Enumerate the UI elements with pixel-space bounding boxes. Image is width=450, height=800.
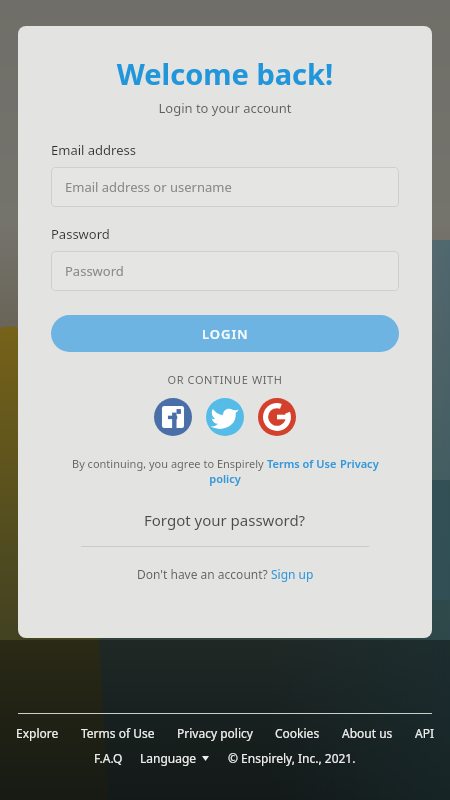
staticText: About us <box>342 725 393 741</box>
button[interactable]: F.A.Q <box>94 750 123 766</box>
staticText: Terms of Use <box>81 725 155 741</box>
button[interactable]: About us <box>342 725 393 741</box>
staticText: Email address or username <box>65 178 232 196</box>
staticText: Language <box>140 750 197 766</box>
button[interactable]: Continue with Google <box>258 398 296 436</box>
button[interactable]: Privacy <box>340 456 379 471</box>
staticText: © Enspirely, Inc., 2021. <box>228 750 356 766</box>
staticText: Don't have an account? <box>137 566 271 582</box>
staticText: OR CONTINUE WITH <box>51 372 399 387</box>
staticText: Email address <box>51 141 136 159</box>
button[interactable]: Terms of Use <box>81 725 155 741</box>
button[interactable]: Terms of Use <box>267 456 337 471</box>
staticText: Welcome back! <box>51 54 399 93</box>
button[interactable]: Explore <box>16 725 59 741</box>
staticText: Cookies <box>275 725 320 741</box>
button[interactable]: LOGIN <box>51 315 399 352</box>
button[interactable]: policy <box>51 471 399 486</box>
button[interactable]: Language <box>140 750 209 766</box>
button[interactable]: Email address or username <box>51 167 399 207</box>
staticText: Privacy policy <box>177 725 253 741</box>
staticText: Explore <box>16 725 59 741</box>
button[interactable]: Forgot your password? <box>51 510 399 530</box>
staticText: LOGIN <box>202 325 249 343</box>
button[interactable]: Sign up <box>271 566 314 582</box>
button[interactable]: Privacy policy <box>177 725 253 741</box>
staticText: Forgot your password? <box>144 510 306 530</box>
staticText: Login to your account <box>51 99 399 117</box>
button[interactable]: Cookies <box>275 725 320 741</box>
staticText: API <box>415 725 434 741</box>
staticText: F.A.Q <box>94 750 123 766</box>
button[interactable]: API <box>415 725 434 741</box>
button[interactable]: Continue with Facebook <box>154 398 192 436</box>
staticText: By continuing, you agree to Enspirely <box>72 456 267 471</box>
button[interactable]: Continue with Twitter <box>206 398 244 436</box>
staticText: Password <box>65 262 124 280</box>
staticText: Password <box>51 225 110 243</box>
button[interactable]: Password <box>51 251 399 291</box>
